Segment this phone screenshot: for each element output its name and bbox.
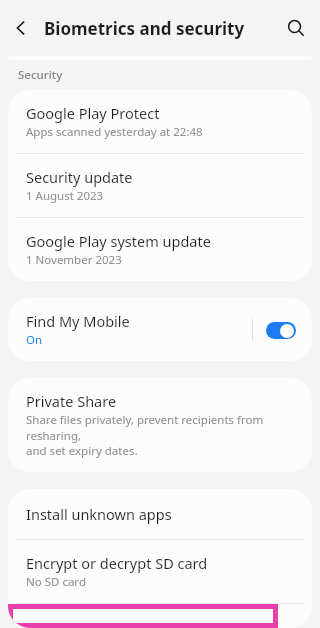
staticText: Apps scanned yesterday at 22:48	[26, 124, 203, 140]
staticText: 1 November 2023	[26, 252, 122, 268]
staticText: Find My Mobile	[26, 311, 130, 331]
button[interactable]: Google Play Protect	[8, 90, 312, 153]
staticText: Share files privately, prevent recipient…	[26, 412, 296, 458]
staticText: Private Share	[26, 391, 117, 411]
staticText: Security update	[26, 167, 133, 187]
staticText: Security	[18, 67, 63, 83]
button[interactable]: Google Play system update	[8, 218, 312, 281]
button[interactable]: Security update	[8, 154, 312, 217]
button[interactable]: Navigate up	[0, 7, 42, 49]
staticText: Biometrics and security	[44, 17, 245, 40]
staticText: Encrypt or decrypt SD card	[26, 553, 208, 573]
button[interactable]: Encrypt or decrypt SD card	[8, 540, 312, 603]
staticText: 1 August 2023	[26, 188, 104, 204]
button[interactable]: Search	[272, 4, 320, 52]
staticText: No SD card	[26, 574, 86, 590]
button[interactable]: Find My Mobile	[8, 298, 312, 361]
button[interactable]: Private Share	[8, 378, 312, 472]
staticText: On	[26, 332, 43, 348]
staticText: Install unknown apps	[26, 504, 172, 524]
button[interactable]: Install unknown apps	[8, 489, 312, 539]
button[interactable]: Find My Mobile toggle, on	[266, 322, 296, 339]
staticText: Google Play Protect	[26, 103, 160, 123]
staticText: Google Play system update	[26, 231, 211, 251]
